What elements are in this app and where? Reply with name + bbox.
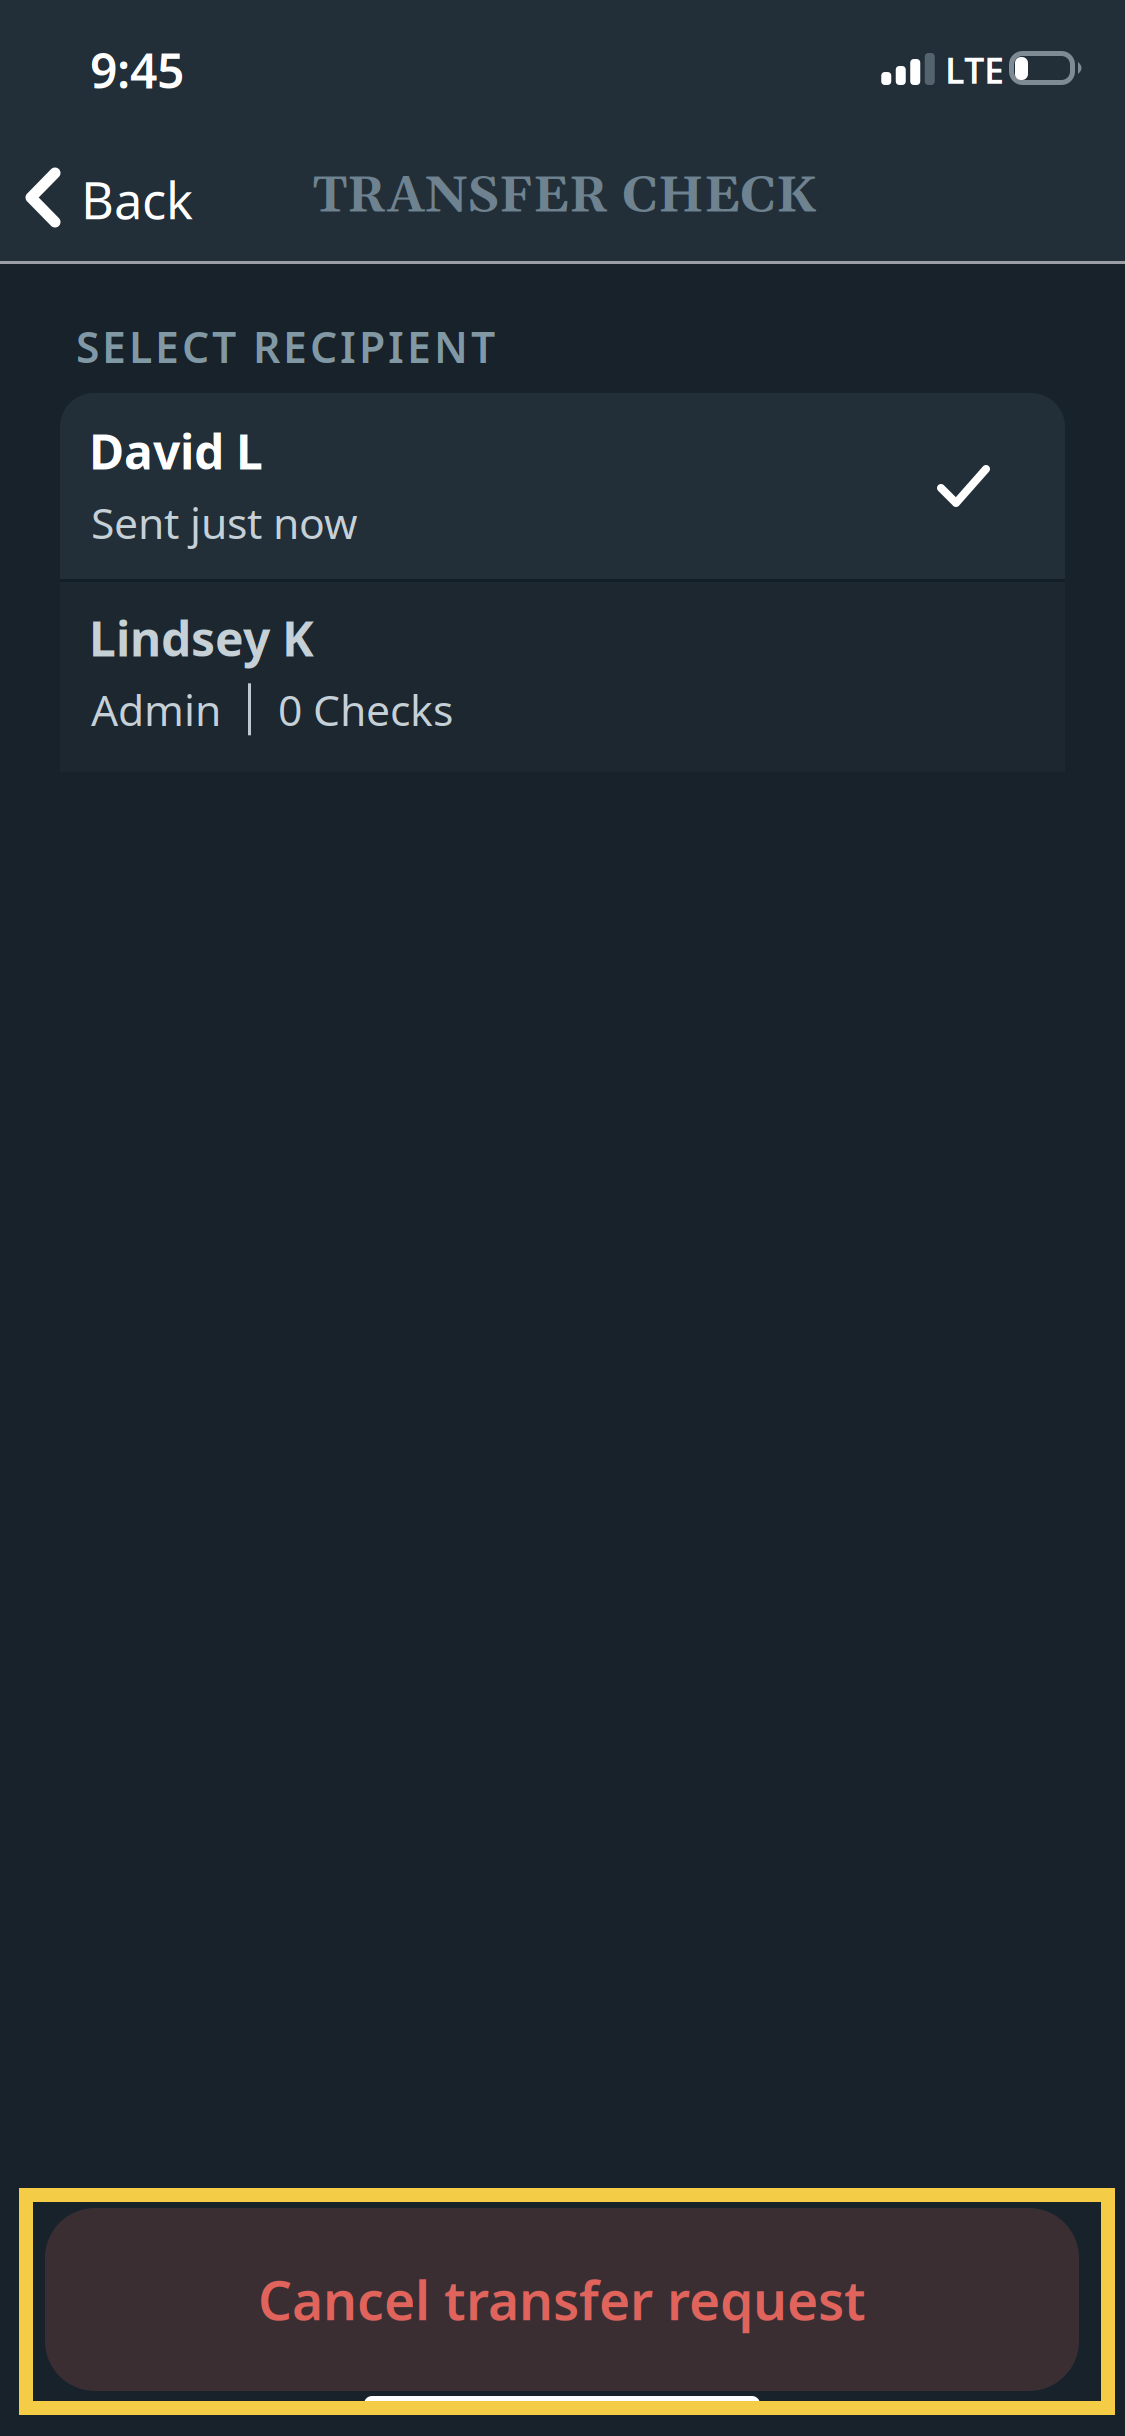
staticText: TRANSFER CHECK xyxy=(313,165,817,228)
button[interactable]: David L xyxy=(60,393,1065,579)
button[interactable]: Back xyxy=(0,132,225,264)
button[interactable]: Lindsey K xyxy=(60,582,1065,772)
staticText: 0 Checks xyxy=(278,681,453,738)
staticText: SELECT RECIPIENT xyxy=(76,318,495,375)
staticText: Admin xyxy=(91,681,221,738)
staticText: Cancel transfer request xyxy=(258,2264,866,2335)
staticText: LTE xyxy=(945,46,1004,94)
staticText: Sent just now xyxy=(91,494,358,551)
button[interactable]: Cancel transfer request xyxy=(45,2208,1079,2391)
staticText: 9:45 xyxy=(90,38,184,102)
staticText: Back xyxy=(81,166,193,233)
staticText: David L xyxy=(89,419,263,483)
staticText: Lindsey K xyxy=(89,606,314,670)
